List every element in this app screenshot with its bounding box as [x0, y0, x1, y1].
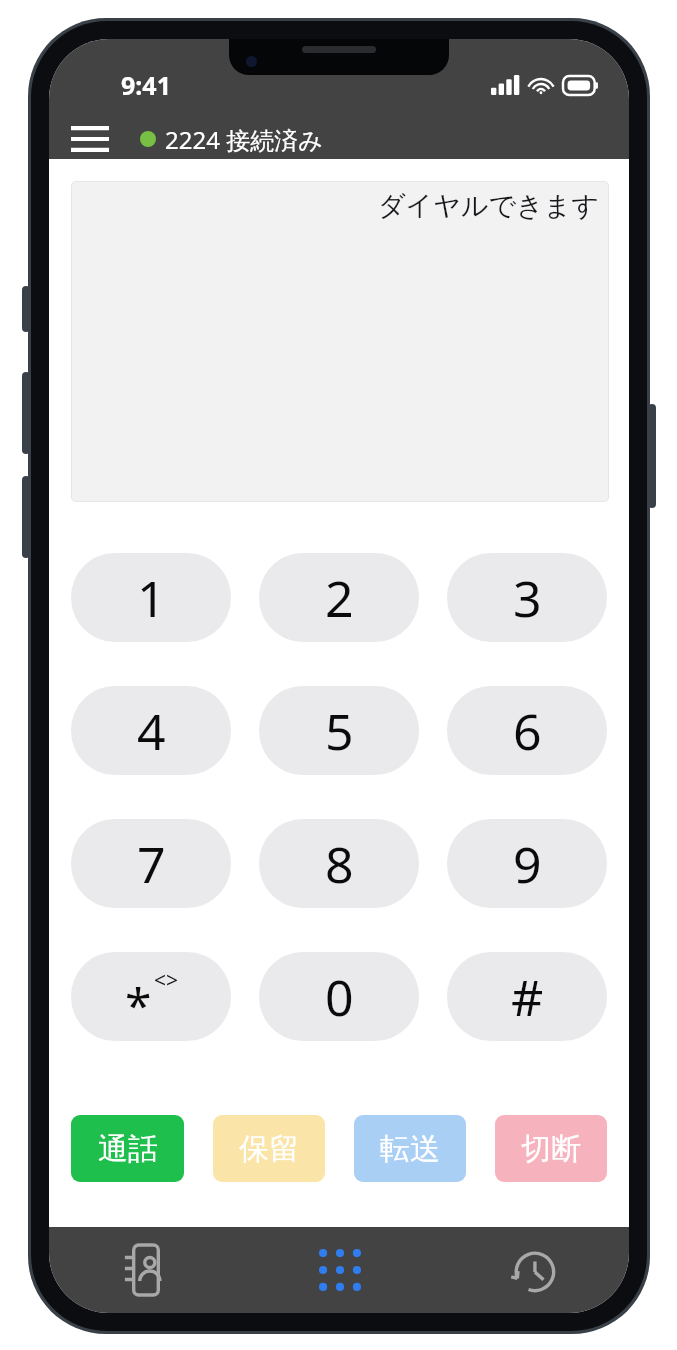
button[interactable]: * [71, 952, 231, 1041]
button[interactable]: 7 [71, 819, 231, 908]
staticText: 7 [137, 830, 166, 898]
button[interactable]: 保留 [213, 1115, 325, 1182]
staticText: 8 [325, 830, 354, 898]
staticText: 2224 接続済み [165, 123, 323, 156]
button[interactable]: 切断 [495, 1115, 607, 1182]
button[interactable]: 4 [71, 686, 231, 775]
staticText: 5 [325, 697, 354, 765]
button[interactable]: 2 [259, 553, 419, 642]
staticText: <> [154, 966, 179, 995]
staticText: 9:41 [121, 68, 171, 102]
button[interactable]: 3 [447, 553, 607, 642]
button[interactable]: 6 [447, 686, 607, 775]
button[interactable]: ダイヤルできます [71, 181, 609, 502]
button[interactable]: 1 [71, 553, 231, 642]
staticText: # [511, 963, 544, 1031]
staticText: 9 [513, 830, 542, 898]
staticText: * [125, 972, 152, 1037]
staticText: 転送 [380, 1130, 440, 1168]
button[interactable]: 8 [259, 819, 419, 908]
button[interactable]: History [436, 1227, 629, 1313]
staticText: 3 [513, 564, 542, 632]
staticText: 4 [137, 697, 166, 765]
staticText: 1 [137, 564, 166, 632]
button[interactable]: 通話 [71, 1115, 184, 1182]
staticText: 0 [325, 963, 354, 1031]
button[interactable]: 9 [447, 819, 607, 908]
button[interactable]: 5 [259, 686, 419, 775]
button[interactable]: Keypad [243, 1227, 436, 1313]
button[interactable]: Menu [63, 119, 117, 159]
staticText: 保留 [239, 1130, 299, 1168]
button[interactable]: # [447, 952, 607, 1041]
staticText: ダイヤルできます [377, 189, 599, 223]
staticText: 6 [513, 697, 542, 765]
button[interactable]: Contacts [49, 1227, 243, 1313]
staticText: 2 [325, 564, 354, 632]
button[interactable]: 転送 [354, 1115, 466, 1182]
button[interactable]: 0 [259, 952, 419, 1041]
staticText: 切断 [521, 1130, 581, 1168]
staticText: 通話 [98, 1130, 158, 1168]
